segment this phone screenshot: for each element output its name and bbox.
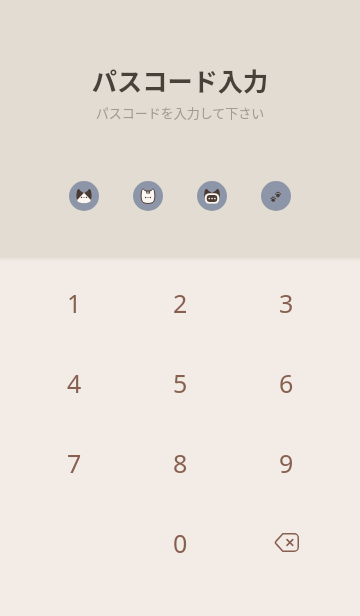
staticText: パスコードを入力して下さい [0,103,360,122]
staticText: 2 [173,286,188,320]
staticText: 8 [173,446,188,480]
button[interactable]: 6 [233,362,339,403]
other: Passcode digit 1 [69,181,99,211]
staticText: 0 [173,526,188,560]
staticText: 9 [279,446,294,480]
button[interactable]: Backspace [233,522,339,563]
button[interactable]: 0 [127,522,233,563]
staticText: 1 [67,286,82,320]
button[interactable]: 3 [233,282,339,323]
other: Passcode digit 3 [197,181,227,211]
button[interactable]: 7 [21,442,127,483]
staticText: 7 [67,446,82,480]
button[interactable]: 2 [127,282,233,323]
staticText: 6 [279,366,294,400]
other: Passcode digit 4 [261,181,291,211]
button[interactable]: 1 [21,282,127,323]
other: Passcode digit 2 [133,181,163,211]
staticText: パスコード入力 [0,62,360,98]
button[interactable]: 8 [127,442,233,483]
staticText: 4 [67,366,82,400]
button[interactable]: 4 [21,362,127,403]
staticText: 5 [173,366,188,400]
button[interactable]: 5 [127,362,233,403]
button[interactable]: 9 [233,442,339,483]
staticText: 3 [279,286,294,320]
